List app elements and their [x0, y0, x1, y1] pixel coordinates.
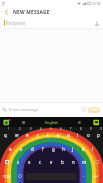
button[interactable]: Emoji keyboard — [14, 169, 25, 183]
button[interactable]: q — [0, 127, 11, 141]
button[interactable]: k — [78, 141, 88, 155]
staticText: y — [57, 132, 60, 138]
staticText: j — [72, 146, 74, 152]
staticText: i — [77, 132, 79, 138]
button[interactable]: x — [24, 155, 35, 169]
button[interactable]: Enter — [89, 169, 103, 183]
button[interactable]: u — [63, 127, 73, 141]
staticText: English — [45, 120, 58, 125]
button[interactable]: f — [38, 141, 48, 155]
staticText: t — [47, 132, 49, 138]
staticText: x — [28, 159, 31, 165]
staticText: 6 — [60, 127, 62, 131]
staticText: 5 — [50, 127, 52, 131]
button[interactable]: s — [16, 141, 27, 155]
button[interactable]: Attach file — [0, 102, 9, 117]
staticText: 5:10 — [93, 1, 101, 6]
button[interactable]: l — [88, 141, 98, 155]
staticText: o — [87, 132, 90, 138]
staticText: . — [83, 173, 85, 179]
button[interactable]: Contacts — [91, 18, 102, 29]
staticText: e — [26, 132, 29, 138]
button[interactable]: i — [73, 127, 83, 141]
button[interactable]: d — [27, 141, 38, 155]
button[interactable]: h — [58, 141, 68, 155]
button[interactable]: b — [57, 155, 68, 169]
staticText: s — [20, 146, 23, 152]
button[interactable]: SEND — [88, 107, 100, 113]
staticText: v — [50, 159, 53, 165]
button[interactable]: c — [35, 155, 46, 169]
button[interactable]: Back — [0, 7, 13, 17]
staticText: ?123 — [3, 174, 11, 179]
button[interactable]: Keyboard settings — [93, 119, 100, 126]
button[interactable]: t — [43, 127, 53, 141]
staticText: r — [37, 132, 39, 138]
button[interactable]: Emoji — [79, 105, 88, 114]
button[interactable]: y — [53, 127, 63, 141]
staticText: u — [67, 132, 70, 138]
staticText: p — [97, 132, 100, 138]
button[interactable]: Clipboard — [21, 120, 26, 125]
button[interactable]: r — [33, 127, 43, 141]
staticText: d — [31, 146, 34, 152]
staticText: m — [82, 159, 87, 165]
button[interactable]: m — [79, 155, 90, 169]
staticText: z — [17, 159, 20, 165]
staticText: Enter message — [9, 107, 39, 113]
staticText: 7 — [70, 127, 72, 131]
button[interactable]: Microphone — [77, 120, 82, 125]
button[interactable]: a — [5, 141, 16, 155]
button[interactable]: n — [68, 155, 79, 169]
button[interactable]: Stickers — [3, 119, 10, 126]
staticText: h — [62, 146, 65, 152]
button[interactable]: ?123 — [0, 169, 14, 183]
staticText: k — [82, 146, 85, 152]
button[interactable]: o — [83, 127, 93, 141]
button[interactable]: w — [11, 127, 22, 141]
staticText: 2 — [19, 127, 21, 131]
staticText: Recipient — [6, 20, 26, 26]
staticText: 9 — [90, 127, 92, 131]
staticText: f — [42, 146, 44, 152]
staticText: b — [61, 159, 64, 165]
button[interactable] — [25, 169, 78, 183]
staticText: n — [72, 159, 75, 165]
button[interactable]: g — [48, 141, 58, 155]
staticText: w — [15, 132, 19, 138]
button[interactable]: v — [46, 155, 57, 169]
staticText: g — [52, 146, 55, 152]
staticText: 4 — [40, 127, 42, 131]
staticText: q — [4, 132, 7, 138]
button[interactable]: e — [22, 127, 33, 141]
staticText: 1 — [8, 127, 10, 131]
staticText: c — [39, 159, 42, 165]
staticText: 3 — [30, 127, 32, 131]
button[interactable]: Backspace — [90, 155, 103, 169]
button[interactable]: j — [68, 141, 78, 155]
button[interactable]: p — [93, 127, 103, 141]
button[interactable]: Shift — [0, 155, 13, 169]
staticText: a — [9, 146, 12, 152]
staticText: NEW MESSAGE — [13, 9, 50, 16]
staticText: SEND — [90, 108, 99, 112]
staticText: l — [92, 146, 94, 152]
staticText: 8 — [80, 127, 82, 131]
button[interactable]: . — [78, 169, 89, 183]
staticText: 0 — [100, 127, 102, 131]
button[interactable]: z — [13, 155, 24, 169]
